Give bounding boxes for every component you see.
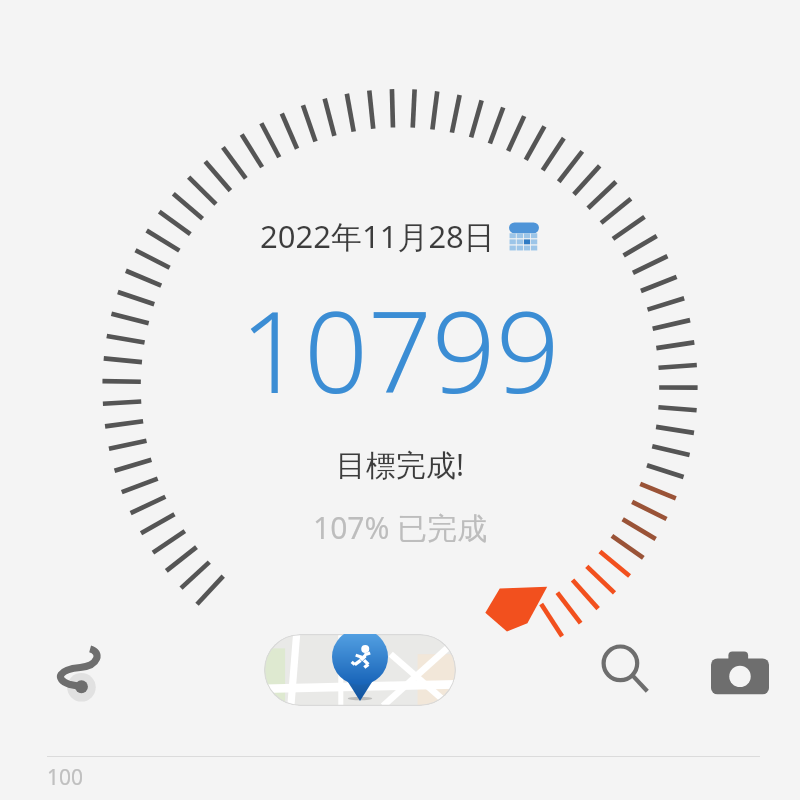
staticText: 2022年11月28日 [260,215,495,257]
button[interactable]: Camera [680,611,800,729]
button[interactable]: Calendar [507,219,541,253]
button[interactable]: Search [572,611,680,729]
button[interactable]: Route [0,611,148,729]
staticText: 目標完成! [336,444,465,485]
staticText: 10799 [240,273,560,426]
button[interactable]: Map [264,634,456,706]
staticText: 100 [47,763,84,792]
staticText: 107% 已完成 [313,507,488,548]
